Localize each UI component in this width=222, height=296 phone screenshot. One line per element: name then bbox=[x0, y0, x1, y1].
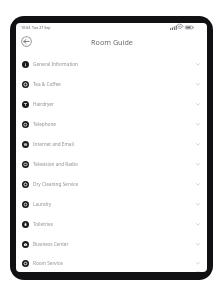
button[interactable]: Back bbox=[21, 36, 32, 47]
staticText: Hairdryer bbox=[33, 101, 54, 107]
staticText: Business Center bbox=[33, 241, 69, 247]
staticText: Television and Radio bbox=[33, 161, 78, 167]
staticText: General Information bbox=[33, 61, 79, 67]
button[interactable]: Laundry bbox=[16, 194, 207, 214]
button[interactable]: Room Service bbox=[16, 254, 207, 272]
button[interactable]: Hairdryer bbox=[16, 94, 207, 114]
staticText: Internet and Email bbox=[33, 141, 74, 147]
staticText: 10:04 Tue 27 Sep bbox=[21, 25, 51, 30]
button[interactable]: Business Center bbox=[16, 234, 207, 254]
button[interactable]: Dry Cleaning Service bbox=[16, 174, 207, 194]
staticText: Dry Cleaning Service bbox=[33, 181, 79, 187]
staticText: Room Service bbox=[33, 260, 63, 266]
button[interactable]: General Information bbox=[16, 54, 207, 74]
button[interactable]: Toiletries bbox=[16, 214, 207, 234]
staticText: Toiletries bbox=[33, 221, 53, 227]
button[interactable]: Television and Radio bbox=[16, 154, 207, 174]
button[interactable]: Internet and Email bbox=[16, 134, 207, 154]
button[interactable]: Telephone bbox=[16, 114, 207, 134]
staticText: Tea & Coffee bbox=[33, 81, 61, 87]
staticText: Laundry bbox=[33, 201, 52, 207]
staticText: Telephone bbox=[33, 121, 56, 127]
staticText: Room Guide bbox=[91, 37, 133, 47]
button[interactable]: Tea & Coffee bbox=[16, 74, 207, 94]
